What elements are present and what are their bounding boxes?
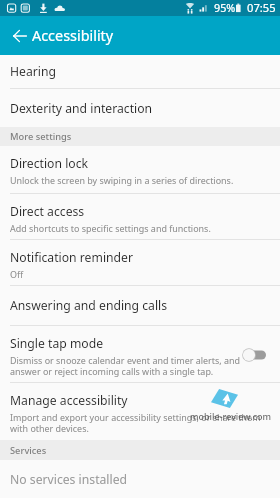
staticText: Hearing bbox=[10, 63, 56, 80]
button[interactable]: Dexterity and interaction bbox=[0, 89, 280, 127]
button[interactable]: Single tap mode bbox=[0, 326, 280, 382]
staticText: Single tap mode bbox=[10, 335, 104, 352]
button[interactable]: Hearing bbox=[0, 55, 280, 88]
staticText: Direction lock bbox=[10, 155, 89, 172]
button[interactable]: Manage accessibility bbox=[0, 383, 280, 440]
staticText: Manage accessibility bbox=[10, 392, 128, 409]
staticText: More settings bbox=[10, 130, 72, 143]
staticText: No services installed bbox=[10, 471, 128, 488]
staticText: 95% bbox=[214, 0, 236, 15]
staticText: Direct access bbox=[10, 203, 85, 220]
button[interactable]: Direction lock bbox=[0, 146, 280, 193]
staticText: 07:55 bbox=[247, 0, 276, 15]
button[interactable]: Single tap mode switch bbox=[241, 346, 271, 364]
staticText: Add shortcuts to specific settings and f… bbox=[10, 222, 211, 234]
button[interactable]: Answering and ending calls bbox=[0, 286, 280, 325]
staticText: Dexterity and interaction bbox=[10, 100, 153, 117]
staticText: mobile-review.com bbox=[190, 410, 272, 422]
button[interactable]: Notification reminder bbox=[0, 240, 280, 285]
staticText: Import and export your accessibility set… bbox=[10, 411, 261, 435]
staticText: Answering and ending calls bbox=[10, 297, 168, 314]
staticText: Dismiss or snooze calendar event and tim… bbox=[10, 354, 240, 378]
button[interactable]: No services installed bbox=[0, 460, 280, 498]
staticText: Accessibility bbox=[32, 26, 114, 46]
button[interactable]: Direct access bbox=[0, 194, 280, 239]
staticText: Services bbox=[10, 444, 47, 457]
staticText: Notification reminder bbox=[10, 249, 133, 266]
button[interactable]: Navigate up bbox=[0, 16, 32, 55]
staticText: Off bbox=[10, 268, 24, 280]
staticText: Unlock the screen by swiping in a series… bbox=[10, 174, 234, 186]
